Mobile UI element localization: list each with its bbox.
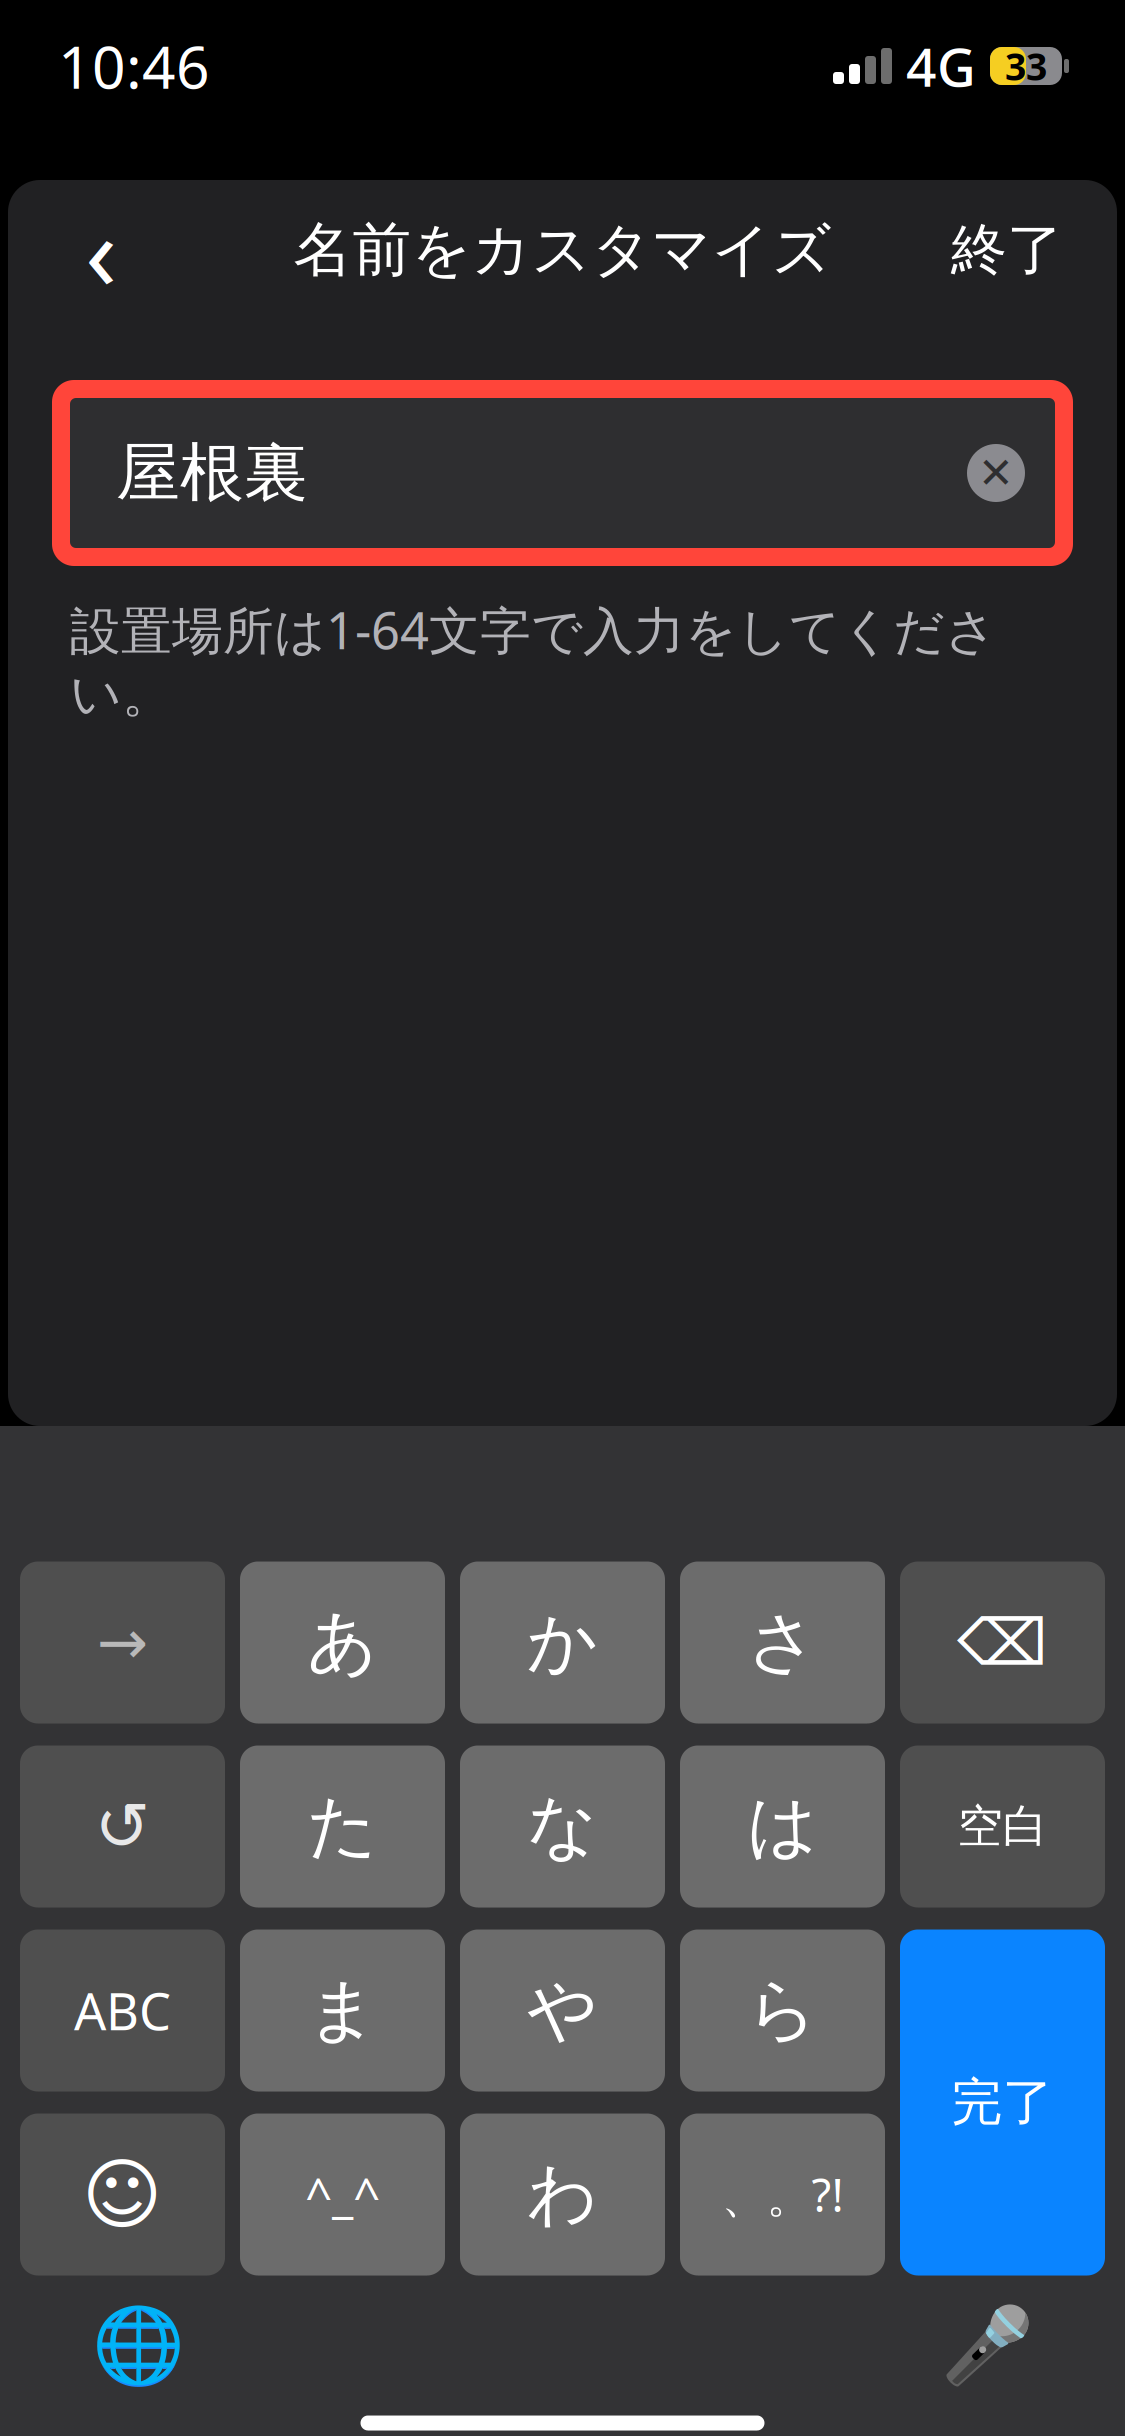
staticText: ‹ bbox=[85, 181, 117, 319]
staticText: あ bbox=[307, 1600, 378, 1685]
button[interactable]: た bbox=[240, 1745, 445, 1907]
button[interactable]: 空白 bbox=[900, 1745, 1105, 1907]
staticText: 10:46 bbox=[58, 27, 210, 105]
button[interactable]: ⌫ bbox=[900, 1561, 1105, 1723]
staticText: さ bbox=[747, 1600, 818, 1685]
staticText: ↺ bbox=[94, 1789, 150, 1864]
button[interactable]: 、。?! bbox=[680, 2113, 885, 2275]
staticText: か bbox=[527, 1600, 598, 1685]
button[interactable]: さ bbox=[680, 1561, 885, 1723]
button[interactable]: 終了 bbox=[935, 195, 1079, 305]
staticText: ☺ bbox=[82, 2151, 163, 2238]
staticText: 屋根裏 bbox=[116, 434, 308, 512]
button[interactable]: 戻る bbox=[46, 195, 156, 305]
staticText: → bbox=[97, 1608, 148, 1677]
staticText: 🌐 bbox=[91, 2303, 184, 2388]
staticText: 終了 bbox=[951, 216, 1063, 284]
staticText: 名前をカスタマイズ bbox=[293, 214, 831, 286]
staticText: は bbox=[747, 1784, 818, 1869]
button[interactable]: か bbox=[460, 1561, 665, 1723]
button[interactable]: ☺ bbox=[20, 2113, 225, 2275]
button[interactable]: → bbox=[20, 1561, 225, 1723]
staticText: ABC bbox=[74, 1977, 171, 2044]
button[interactable]: 音声入力 bbox=[927, 2290, 1047, 2400]
button[interactable]: わ bbox=[460, 2113, 665, 2275]
staticText: 、。?! bbox=[721, 2164, 843, 2225]
staticText: 4G bbox=[906, 31, 976, 101]
staticText: ^_^ bbox=[305, 2163, 380, 2226]
button[interactable]: な bbox=[460, 1745, 665, 1907]
staticText: 33 bbox=[1005, 41, 1047, 91]
button[interactable]: ↺ bbox=[20, 1745, 225, 1907]
button[interactable]: や bbox=[460, 1929, 665, 2091]
button[interactable]: 消去 bbox=[953, 430, 1039, 516]
staticText: 空白 bbox=[957, 1799, 1047, 1854]
button[interactable]: は bbox=[680, 1745, 885, 1907]
staticText: ⌫ bbox=[957, 1606, 1048, 1679]
staticText: わ bbox=[527, 2152, 598, 2237]
staticText: た bbox=[307, 1784, 378, 1869]
button[interactable]: ABC bbox=[20, 1929, 225, 2091]
staticText: な bbox=[527, 1784, 598, 1869]
staticText: ✕ bbox=[978, 449, 1014, 497]
button[interactable]: あ bbox=[240, 1561, 445, 1723]
button[interactable]: ^_^ bbox=[240, 2113, 445, 2275]
button[interactable]: ら bbox=[680, 1929, 885, 2091]
staticText: ま bbox=[307, 1968, 378, 2053]
staticText: ら bbox=[747, 1968, 818, 2053]
staticText: 完了 bbox=[951, 2071, 1053, 2134]
button[interactable]: 次のキーボード bbox=[78, 2290, 198, 2400]
staticText: 🎤 bbox=[940, 2303, 1033, 2388]
button[interactable]: 完了 bbox=[900, 1929, 1105, 2275]
staticText: や bbox=[527, 1968, 598, 2053]
staticText: 設置場所は1-64文字で入力をしてください。 bbox=[70, 596, 997, 725]
button[interactable]: ま bbox=[240, 1929, 445, 2091]
